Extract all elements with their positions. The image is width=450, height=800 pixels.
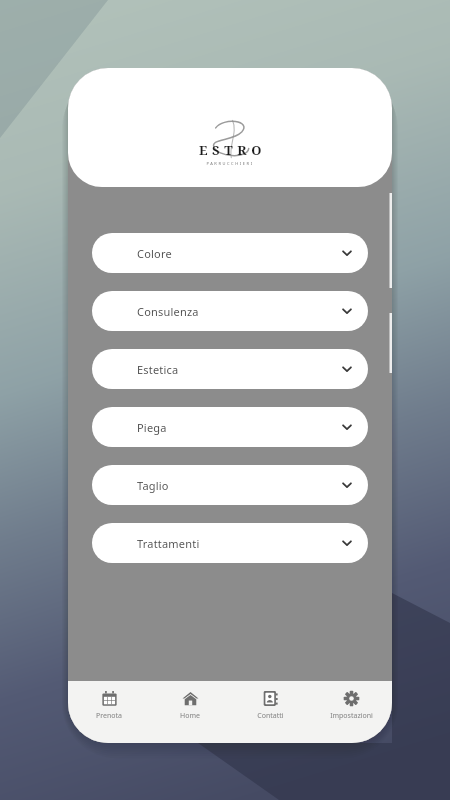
staticText: E S T R O — [199, 141, 262, 159]
staticText: Home — [180, 711, 200, 721]
staticText: Taglio — [137, 478, 169, 493]
button[interactable]: Trattamenti — [92, 523, 368, 563]
staticText: Colore — [137, 246, 172, 261]
button[interactable]: Estetica — [92, 349, 368, 389]
button[interactable]: Impostazioni — [312, 690, 390, 721]
staticText: Prenota — [96, 711, 122, 721]
button[interactable]: Prenota — [70, 690, 148, 721]
staticText: Piega — [137, 420, 167, 435]
staticText: Contatti — [257, 711, 284, 721]
button[interactable]: Home — [151, 690, 229, 721]
staticText: Estetica — [137, 362, 179, 377]
staticText: Trattamenti — [137, 536, 200, 551]
staticText: Consulenza — [137, 304, 199, 319]
button[interactable]: Taglio — [92, 465, 368, 505]
staticText: Impostazioni — [330, 711, 373, 721]
button[interactable]: Colore — [92, 233, 368, 273]
button[interactable]: Contatti — [231, 690, 309, 721]
button[interactable]: Consulenza — [92, 291, 368, 331]
staticText: PARRUCCHIERI — [206, 161, 254, 166]
button[interactable]: Piega — [92, 407, 368, 447]
